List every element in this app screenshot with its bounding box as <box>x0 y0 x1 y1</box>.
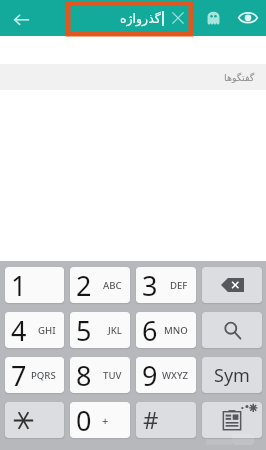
button[interactable]: # <box>136 402 196 438</box>
staticText: 9 <box>142 357 158 393</box>
staticText: 0 <box>76 402 92 438</box>
button[interactable]: گفتگوها <box>0 64 266 90</box>
staticText: GHI <box>38 324 56 337</box>
staticText: 5 <box>76 312 92 348</box>
button[interactable]: 2 <box>70 267 130 303</box>
button[interactable]: 9 <box>136 357 196 393</box>
button[interactable]: Search <box>202 312 262 348</box>
button[interactable]: Back <box>5 3 37 35</box>
staticText: PQRS <box>31 369 56 382</box>
staticText: گفتگوها <box>224 72 255 83</box>
staticText: 7 <box>11 357 27 393</box>
button[interactable]: 1 <box>5 267 64 303</box>
staticText: # <box>143 403 159 436</box>
staticText: WXYZ <box>162 369 188 382</box>
button[interactable]: گذرواژه <box>70 0 164 36</box>
button[interactable]: 6 <box>136 312 196 348</box>
staticText: 2 <box>76 267 92 303</box>
staticText: 1 <box>11 267 27 303</box>
button[interactable]: Delete <box>202 267 262 303</box>
staticText: ABC <box>103 279 122 292</box>
staticText: گذرواژه <box>120 11 161 26</box>
button[interactable]: 0 <box>70 402 130 438</box>
button[interactable]: 8 <box>70 357 130 393</box>
staticText: 3 <box>142 267 158 303</box>
staticText: TUV <box>103 369 122 382</box>
button[interactable]: 3 <box>136 267 196 303</box>
button[interactable]: Clear <box>166 0 189 36</box>
staticText: 6 <box>142 312 158 348</box>
button[interactable]: 4 <box>5 312 64 348</box>
staticText: + <box>102 413 109 428</box>
button[interactable]: Incognito mode <box>197 0 229 34</box>
button[interactable]: Change keyboard <box>202 402 262 438</box>
staticText: Sym <box>214 363 250 388</box>
staticText: MNO <box>164 324 188 337</box>
staticText: 8 <box>76 357 92 393</box>
button[interactable]: 7 <box>5 357 64 393</box>
button[interactable]: Star <box>5 402 64 438</box>
staticText: JKL <box>108 324 122 337</box>
staticText: DEF <box>170 279 188 292</box>
button[interactable]: Show password <box>231 0 264 34</box>
button[interactable]: Sym <box>202 357 262 393</box>
button[interactable]: 5 <box>70 312 130 348</box>
staticText: 4 <box>11 312 27 348</box>
